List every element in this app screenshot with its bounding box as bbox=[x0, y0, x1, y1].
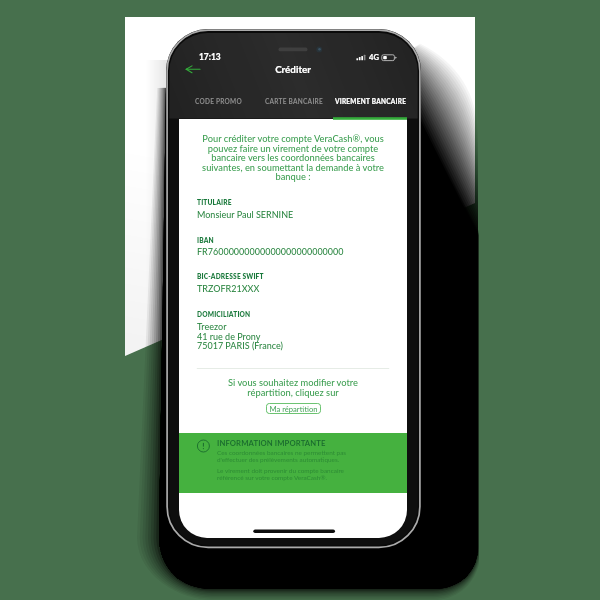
staticText: 17:13 bbox=[199, 52, 221, 62]
staticText: banque : bbox=[197, 171, 389, 182]
staticText: d'effectuer des prélèvements automatique… bbox=[217, 456, 340, 464]
staticText: INFORMATION IMPORTANTE bbox=[217, 438, 326, 447]
staticText: TITULAIRE bbox=[197, 198, 232, 206]
staticText: Le virement doit provenir du compte banc… bbox=[217, 467, 344, 475]
staticText: 4G bbox=[369, 52, 379, 61]
staticText: CODE PROMO bbox=[195, 98, 242, 106]
staticText: Créditer bbox=[179, 63, 407, 75]
button[interactable]: Back bbox=[183, 60, 203, 79]
staticText: suivantes, en soumettant la demande à vo… bbox=[197, 162, 389, 173]
staticText: VIREMENT BANCAIRE bbox=[335, 98, 407, 106]
staticText: 75017 PARIS (France) bbox=[197, 340, 283, 351]
staticText: Si vous souhaitez modifier votre bbox=[197, 377, 389, 388]
button[interactable]: Ma répartition bbox=[266, 403, 321, 414]
button[interactable]: VIREMENT BANCAIRE bbox=[319, 94, 422, 110]
staticText: 41 rue de Prony bbox=[197, 331, 261, 342]
staticText: Ma répartition bbox=[266, 404, 321, 413]
staticText: IBAN bbox=[197, 236, 214, 244]
staticText: CARTE BANCAIRE bbox=[265, 98, 323, 106]
button[interactable]: CARTE BANCAIRE bbox=[242, 94, 345, 110]
staticText: TRZOFR21XXX bbox=[197, 283, 260, 294]
staticText: répartition, cliquez sur bbox=[197, 387, 389, 398]
staticText: Pour créditer votre compte VeraCash®, vo… bbox=[197, 133, 389, 144]
staticText: référencé sur votre compte VeraCash®. bbox=[217, 474, 328, 482]
staticText: Monsieur Paul SERNINE bbox=[197, 209, 294, 220]
staticText: Ces coordonnées bancaires ne permettent … bbox=[217, 449, 347, 457]
staticText: pouvez faire un virement de votre compte bbox=[197, 143, 389, 154]
staticText: DOMICILIATION bbox=[197, 310, 251, 318]
staticText: Treezor bbox=[197, 321, 227, 332]
staticText: BIC-ADRESSE SWIFT bbox=[197, 272, 264, 280]
staticText: bancaire vers les coordonnées bancaires bbox=[197, 152, 389, 163]
button[interactable]: CODE PROMO bbox=[167, 94, 270, 110]
staticText: FR76000000000000000000000000 bbox=[197, 246, 344, 257]
